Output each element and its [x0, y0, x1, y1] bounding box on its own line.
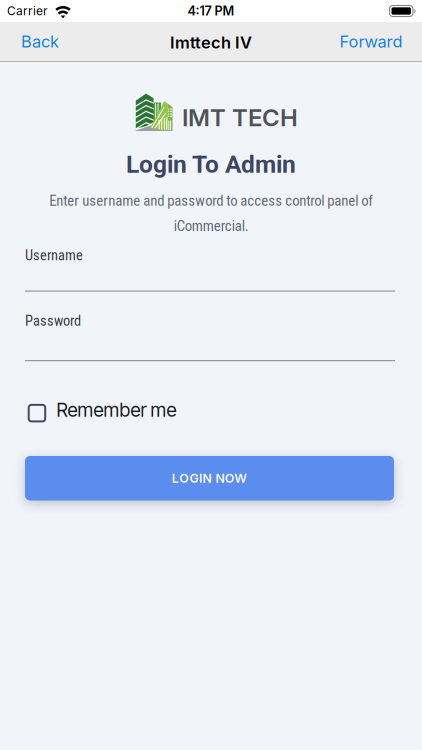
staticText: Back — [21, 32, 59, 51]
button[interactable]: LOGIN NOW — [25, 456, 394, 500]
staticText: Remember me — [56, 398, 176, 421]
button[interactable]: Back — [21, 32, 59, 51]
staticText: Login To Admin — [126, 150, 296, 179]
button[interactable]: Remember me — [28, 398, 176, 421]
staticText: LOGIN NOW — [172, 471, 247, 486]
staticText: Carrier — [7, 4, 48, 18]
button[interactable]: Forward — [339, 32, 402, 51]
button[interactable]: Username — [25, 247, 395, 292]
staticText: Forward — [339, 32, 402, 51]
staticText: Username — [25, 247, 83, 264]
staticText: Enter username and password to access co… — [49, 192, 373, 235]
staticText: 4:17 PM — [187, 3, 234, 19]
staticText: Imttech IV — [170, 33, 252, 52]
staticText: Password — [25, 312, 81, 329]
button[interactable]: Password — [25, 312, 395, 361]
staticText: IMT TECH — [182, 103, 298, 132]
